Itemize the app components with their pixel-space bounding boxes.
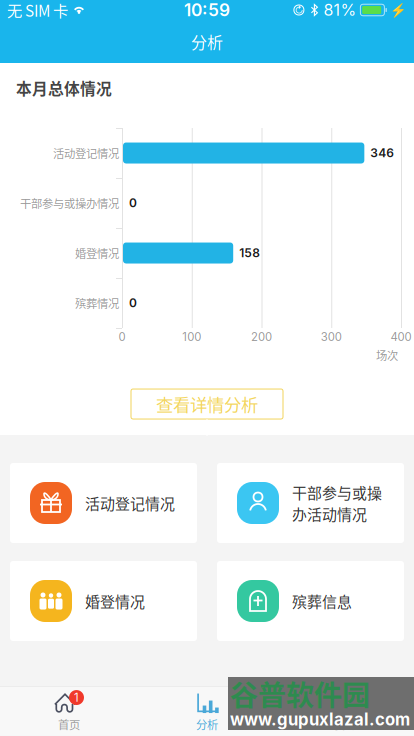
staticText: 活动登记情况 [85, 492, 175, 514]
button[interactable]: 查看详情分析 [131, 389, 283, 419]
staticText: 谷普软件园 [230, 673, 370, 714]
button[interactable]: 活动登记情况 [10, 463, 197, 543]
staticText: 300 [321, 330, 342, 344]
staticText: 400 [390, 330, 411, 344]
staticText: 无 SIM 卡 [7, 0, 68, 21]
staticText: 活动登记情况 [53, 145, 119, 161]
staticText: 158 [239, 246, 260, 260]
staticText: www.gupuxlazal.com [230, 709, 410, 730]
staticText: 分析 [196, 716, 218, 732]
staticText: 10:59 [184, 0, 230, 20]
button[interactable]: 婚登情况 [10, 561, 197, 641]
staticText: 200 [251, 330, 272, 344]
staticText: 0 [129, 196, 137, 210]
button[interactable]: 1 [0, 687, 138, 736]
staticText: 346 [370, 146, 394, 160]
staticText: 干部参与或操办情况 [20, 195, 119, 211]
staticText: 干部参与或操办活动情况 [292, 481, 382, 525]
button[interactable]: 分析 [138, 687, 276, 736]
staticText: 100 [182, 330, 201, 344]
staticText: 分析 [191, 30, 223, 53]
button[interactable]: 殡葬信息 [217, 561, 404, 641]
staticText: 81% [323, 0, 356, 20]
staticText: 婚登情况 [85, 590, 145, 612]
staticText: 首页 [58, 716, 80, 732]
button[interactable]: 干部参与或操办活动情况 [217, 463, 404, 543]
staticText: 殡葬情况 [75, 295, 119, 311]
staticText: ⚡ [390, 2, 407, 18]
staticText: 殡葬信息 [292, 590, 352, 612]
staticText: 我的 [334, 716, 356, 732]
staticText: 1 [74, 691, 79, 704]
staticText: 0 [129, 296, 137, 310]
staticText: 本月总体情况 [16, 77, 112, 99]
staticText: 场次 [376, 347, 398, 363]
staticText: 0 [118, 330, 125, 344]
button[interactable]: 我的 [276, 687, 414, 736]
staticText: 查看详情分析 [156, 391, 258, 417]
staticText: ↻ [294, 4, 303, 16]
staticText: 婚登情况 [75, 245, 119, 261]
